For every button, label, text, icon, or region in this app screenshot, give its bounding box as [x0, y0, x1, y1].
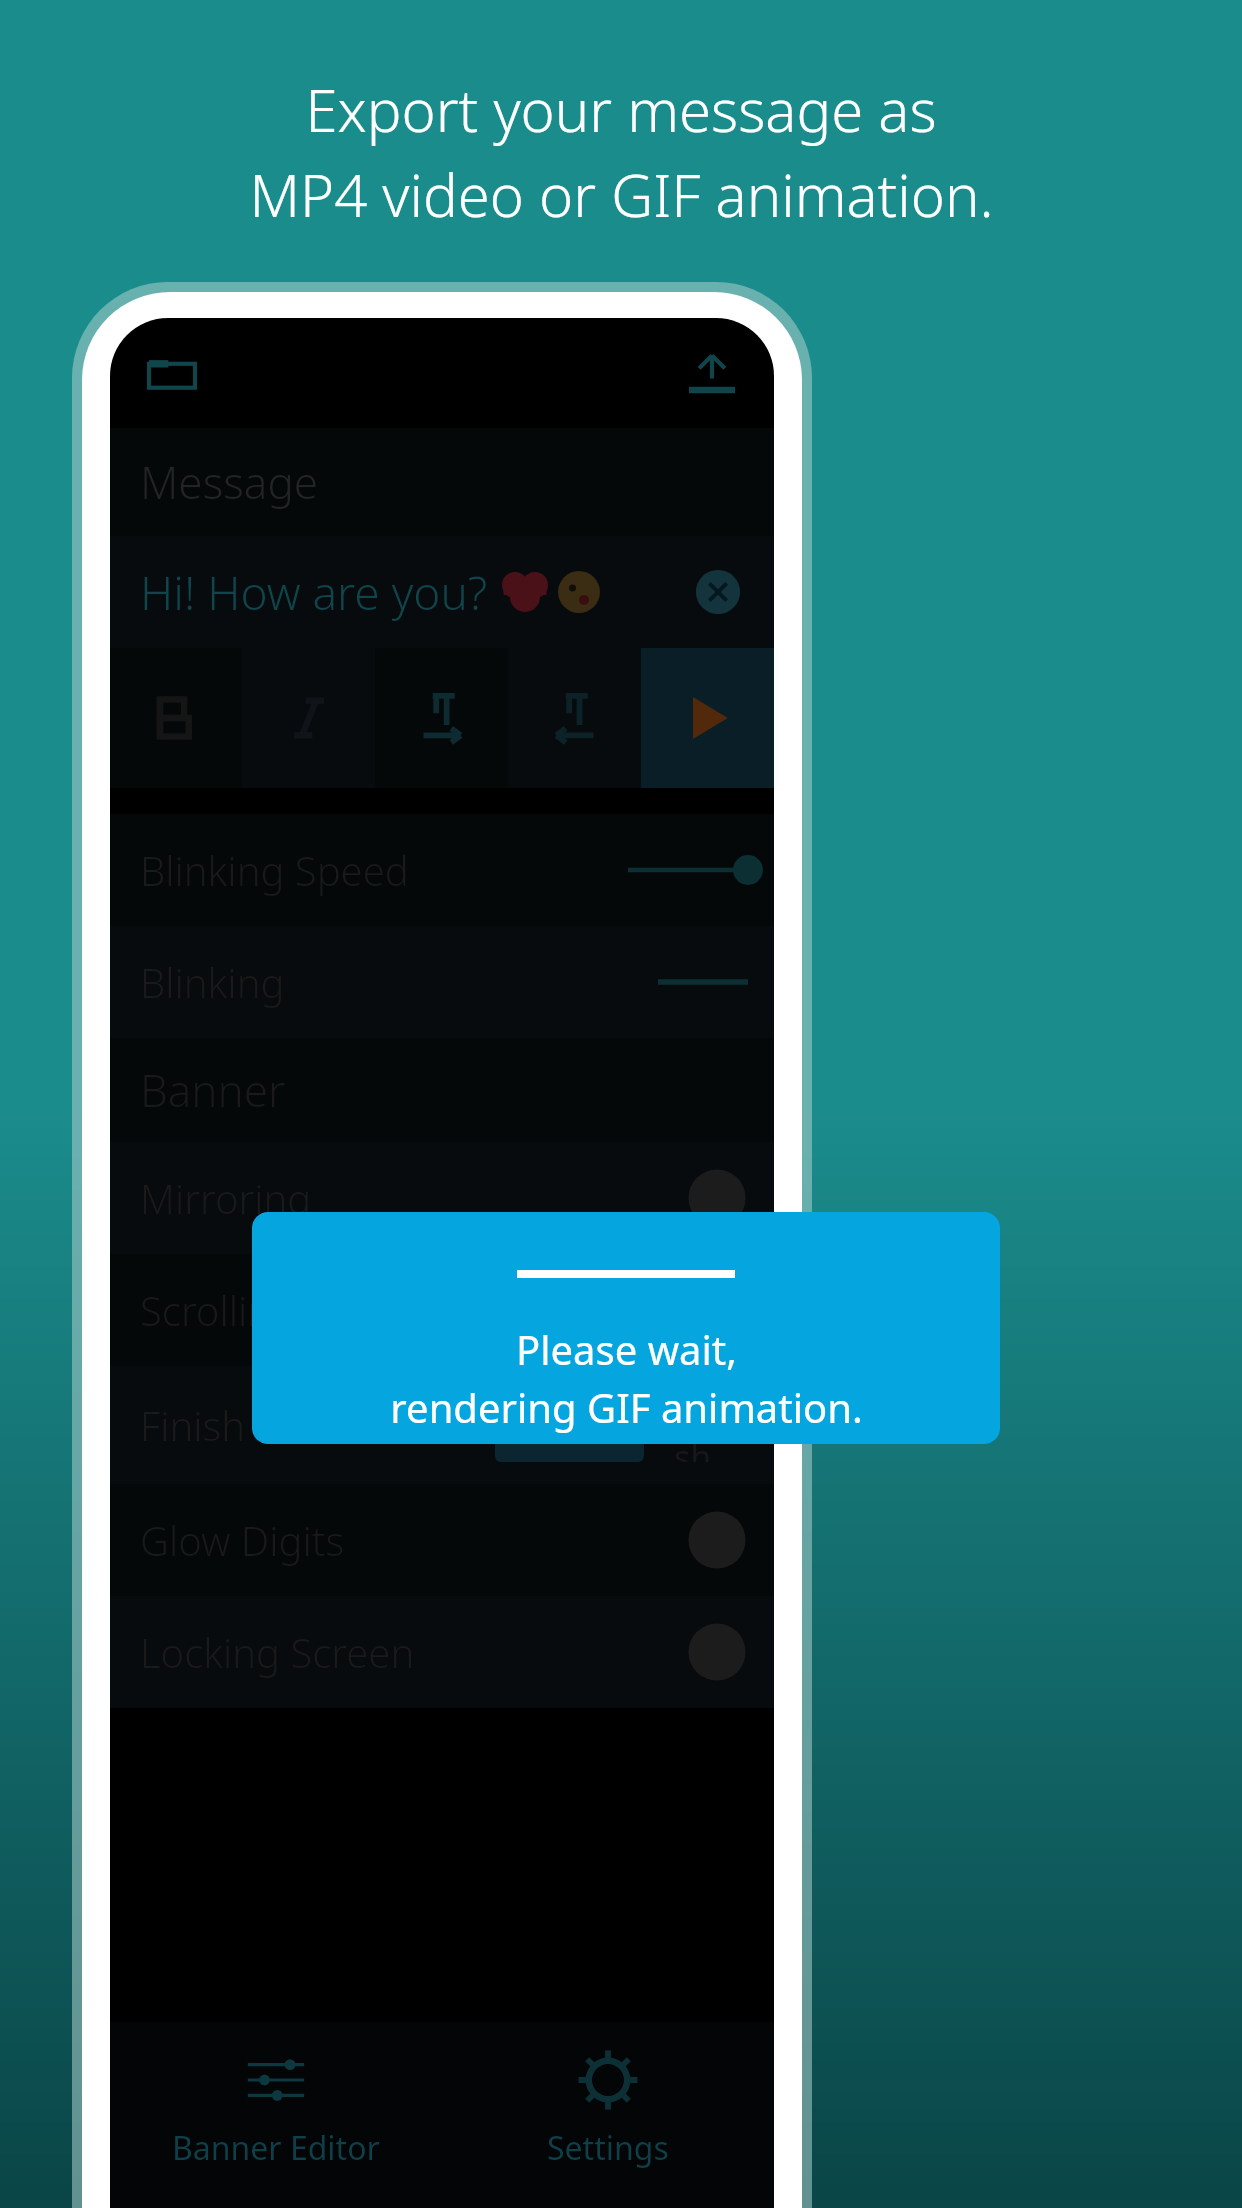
button[interactable]: Format	[508, 648, 641, 788]
button[interactable]: None	[358, 1388, 485, 1462]
staticText: Smoke	[515, 1402, 624, 1448]
staticText: Hi! How are you?	[140, 561, 488, 624]
staticText: rendering GIF animation.	[390, 1380, 863, 1434]
staticText: Blinking Speed	[140, 843, 409, 897]
staticText: Please wait,	[516, 1322, 737, 1376]
button[interactable]: Open project	[136, 337, 208, 409]
staticText: Settings	[547, 2126, 669, 2170]
button[interactable]: Format	[375, 648, 508, 788]
button[interactable]: Mirroring	[110, 1142, 774, 1254]
button[interactable]: Settings	[442, 2022, 774, 2208]
staticText: Locking Screen	[140, 1625, 415, 1679]
button[interactable]: Format	[110, 648, 242, 788]
button[interactable]: Smoke	[495, 1388, 644, 1462]
staticText: Scrolling Speed	[140, 1283, 420, 1337]
staticText: Mirroring	[140, 1171, 312, 1225]
button[interactable]: Glow Digits	[110, 1484, 774, 1596]
staticText: Flash	[674, 1388, 730, 1462]
staticText: Glow Digits	[140, 1513, 345, 1567]
staticText: Blinking	[140, 955, 285, 1009]
staticText: Export your message as	[305, 70, 937, 149]
staticText: Message	[140, 452, 319, 512]
button[interactable]: Locking Screen	[110, 1596, 774, 1708]
staticText: Finish Effect	[140, 1398, 358, 1452]
button[interactable]: Scrolling Speed	[110, 1254, 774, 1366]
button[interactable]: Blinking Speed	[110, 814, 774, 926]
button[interactable]: Hi! How are you?	[110, 536, 774, 648]
button[interactable]: Flash	[654, 1388, 750, 1462]
staticText: MP4 video or GIF animation.	[249, 155, 994, 234]
button[interactable]: Clear text	[688, 562, 748, 622]
staticText: None	[378, 1402, 465, 1448]
button[interactable]: Please wait,	[252, 1212, 1000, 1444]
button[interactable]: Banner Editor	[110, 2022, 442, 2208]
staticText: Banner	[140, 1060, 286, 1120]
button[interactable]: Play preview	[641, 648, 774, 788]
staticText: Banner Editor	[172, 2126, 380, 2170]
button[interactable]: Blinking	[110, 926, 774, 1038]
button[interactable]: Export	[676, 337, 748, 409]
